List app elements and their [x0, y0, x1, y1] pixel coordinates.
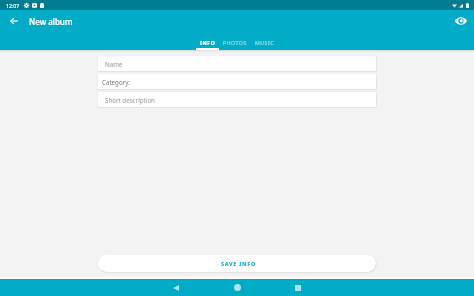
button[interactable]: Short description — [98, 92, 376, 107]
button[interactable]: Back — [161, 279, 191, 296]
staticText: INFO — [200, 39, 216, 46]
staticText: PHOTOS — [223, 39, 247, 46]
button[interactable]: PHOTOS — [222, 37, 248, 50]
button[interactable]: MUSIC — [253, 37, 276, 50]
button[interactable]: Category: — [98, 74, 376, 89]
button[interactable]: SAVE INFO — [98, 255, 376, 272]
button[interactable]: INFO — [196, 37, 219, 50]
button[interactable]: Back — [3, 10, 24, 31]
staticText: Category: — [102, 78, 131, 86]
staticText: 12:07 — [6, 2, 20, 9]
staticText: Name — [105, 60, 123, 68]
button[interactable]: Recents — [282, 279, 313, 296]
staticText: SAVE INFO — [221, 260, 257, 268]
staticText: Short description — [105, 96, 155, 104]
button[interactable]: Home — [222, 279, 253, 296]
staticText: New album — [29, 16, 73, 27]
button[interactable]: Preview — [450, 10, 471, 31]
staticText: MUSIC — [255, 39, 275, 46]
button[interactable]: Name — [98, 56, 376, 71]
